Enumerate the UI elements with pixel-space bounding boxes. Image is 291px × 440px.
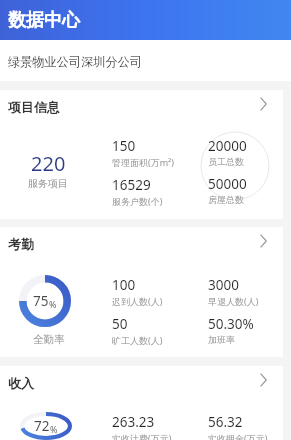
staticText: 实收计费(万元) (112, 432, 172, 440)
other: 展开 项目信息 (260, 97, 267, 111)
staticText: 项目信息 (8, 99, 60, 115)
staticText: 实收押金(万元) (208, 432, 268, 440)
staticText: 迟到人数(人) (112, 295, 163, 307)
button[interactable]: 项目信息 (0, 90, 283, 118)
staticText: 旷工人数(人) (112, 334, 163, 346)
staticText: 50000 (208, 175, 247, 193)
staticText: 服务项目 (28, 177, 68, 190)
staticText: 房屋总数 (208, 194, 244, 205)
staticText: 加班率 (208, 334, 235, 345)
staticText: 早退人数(人) (208, 295, 259, 307)
staticText: 16529 (112, 176, 151, 194)
staticText: 数据中心 (8, 9, 80, 32)
other: 展开 考勤 (260, 234, 267, 248)
button[interactable]: 收入 (0, 366, 283, 394)
staticText: 20000 (208, 137, 247, 155)
staticText: 管理面积(万m²) (112, 156, 174, 168)
staticText: % (49, 298, 57, 310)
staticText: 56.32 (208, 413, 243, 431)
staticText: 72 (34, 417, 50, 435)
staticText: 100 (112, 276, 136, 294)
staticText: % (50, 423, 58, 435)
staticText: 50.30% (208, 315, 254, 333)
other: 展开 收入 (260, 373, 267, 387)
staticText: 服务户数(个) (112, 195, 163, 207)
staticText: 150 (112, 137, 136, 155)
staticText: 绿景物业公司深圳分公司 (8, 54, 143, 69)
staticText: 263.23 (112, 413, 155, 431)
staticText: 3000 (208, 276, 239, 294)
staticText: 220 (31, 150, 66, 177)
staticText: 全勤率 (33, 333, 65, 346)
staticText: 员工总数 (208, 156, 244, 167)
staticText: 考勤 (8, 236, 34, 252)
staticText: 75 (33, 292, 49, 310)
staticText: 50 (112, 315, 128, 333)
staticText: 收入 (8, 375, 34, 391)
button[interactable]: 考勤 (0, 227, 283, 255)
